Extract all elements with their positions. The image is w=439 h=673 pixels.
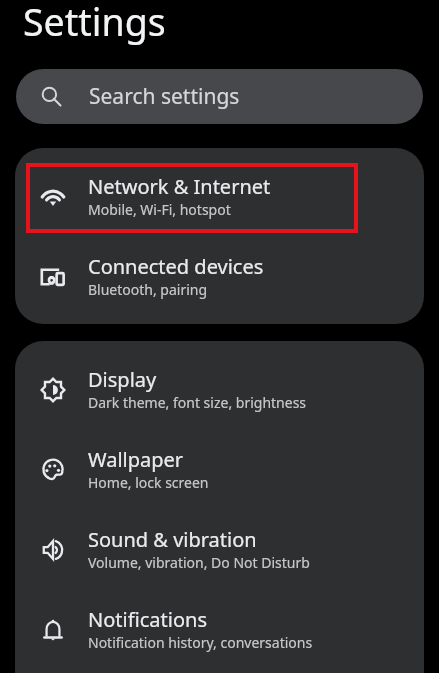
- staticText: Network & Internet: [88, 173, 271, 200]
- staticText: Search settings: [89, 82, 240, 111]
- staticText: Notifications: [88, 606, 207, 633]
- other: Search: [41, 86, 62, 107]
- staticText: Settings: [23, 0, 166, 47]
- staticText: Dark theme, font size, brightness: [88, 393, 307, 412]
- staticText: Bluetooth, pairing: [88, 280, 208, 299]
- staticText: Notification history, conversations: [88, 633, 313, 652]
- staticText: Sound & vibration: [88, 526, 257, 553]
- staticText: Volume, vibration, Do Not Disturb: [88, 553, 310, 572]
- staticText: Home, lock screen: [88, 473, 209, 492]
- staticText: Mobile, Wi-Fi, hotspot: [88, 200, 231, 219]
- button[interactable]: Sound & vibration: [15, 509, 424, 589]
- staticText: Display: [88, 366, 157, 393]
- button[interactable]: Wallpaper: [15, 429, 424, 509]
- button[interactable]: Connected devices: [15, 236, 424, 316]
- button[interactable]: Search: [16, 69, 423, 124]
- button[interactable]: Display: [15, 349, 424, 429]
- button[interactable]: Network & Internet: [15, 156, 424, 236]
- staticText: Connected devices: [88, 253, 264, 280]
- button[interactable]: Notifications: [15, 589, 424, 669]
- staticText: Wallpaper: [88, 446, 184, 473]
